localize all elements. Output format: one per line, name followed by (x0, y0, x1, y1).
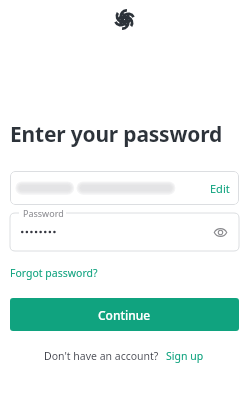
button[interactable]: Forgot password? (6, 264, 102, 282)
button[interactable]: Continue (10, 298, 239, 331)
staticText: Don't have an account? (44, 349, 159, 363)
button[interactable]: Sign up (164, 347, 206, 365)
button[interactable]: Edit (10, 171, 239, 205)
staticText: Password (23, 207, 64, 219)
staticText: Sign up (166, 349, 204, 363)
staticText: Enter your password (10, 120, 222, 149)
button[interactable]: Show password (10, 213, 239, 251)
staticText: Continue (98, 307, 151, 323)
staticText: Forgot password? (10, 266, 98, 280)
button[interactable]: Show password (209, 221, 231, 243)
staticText: Edit (210, 181, 230, 196)
